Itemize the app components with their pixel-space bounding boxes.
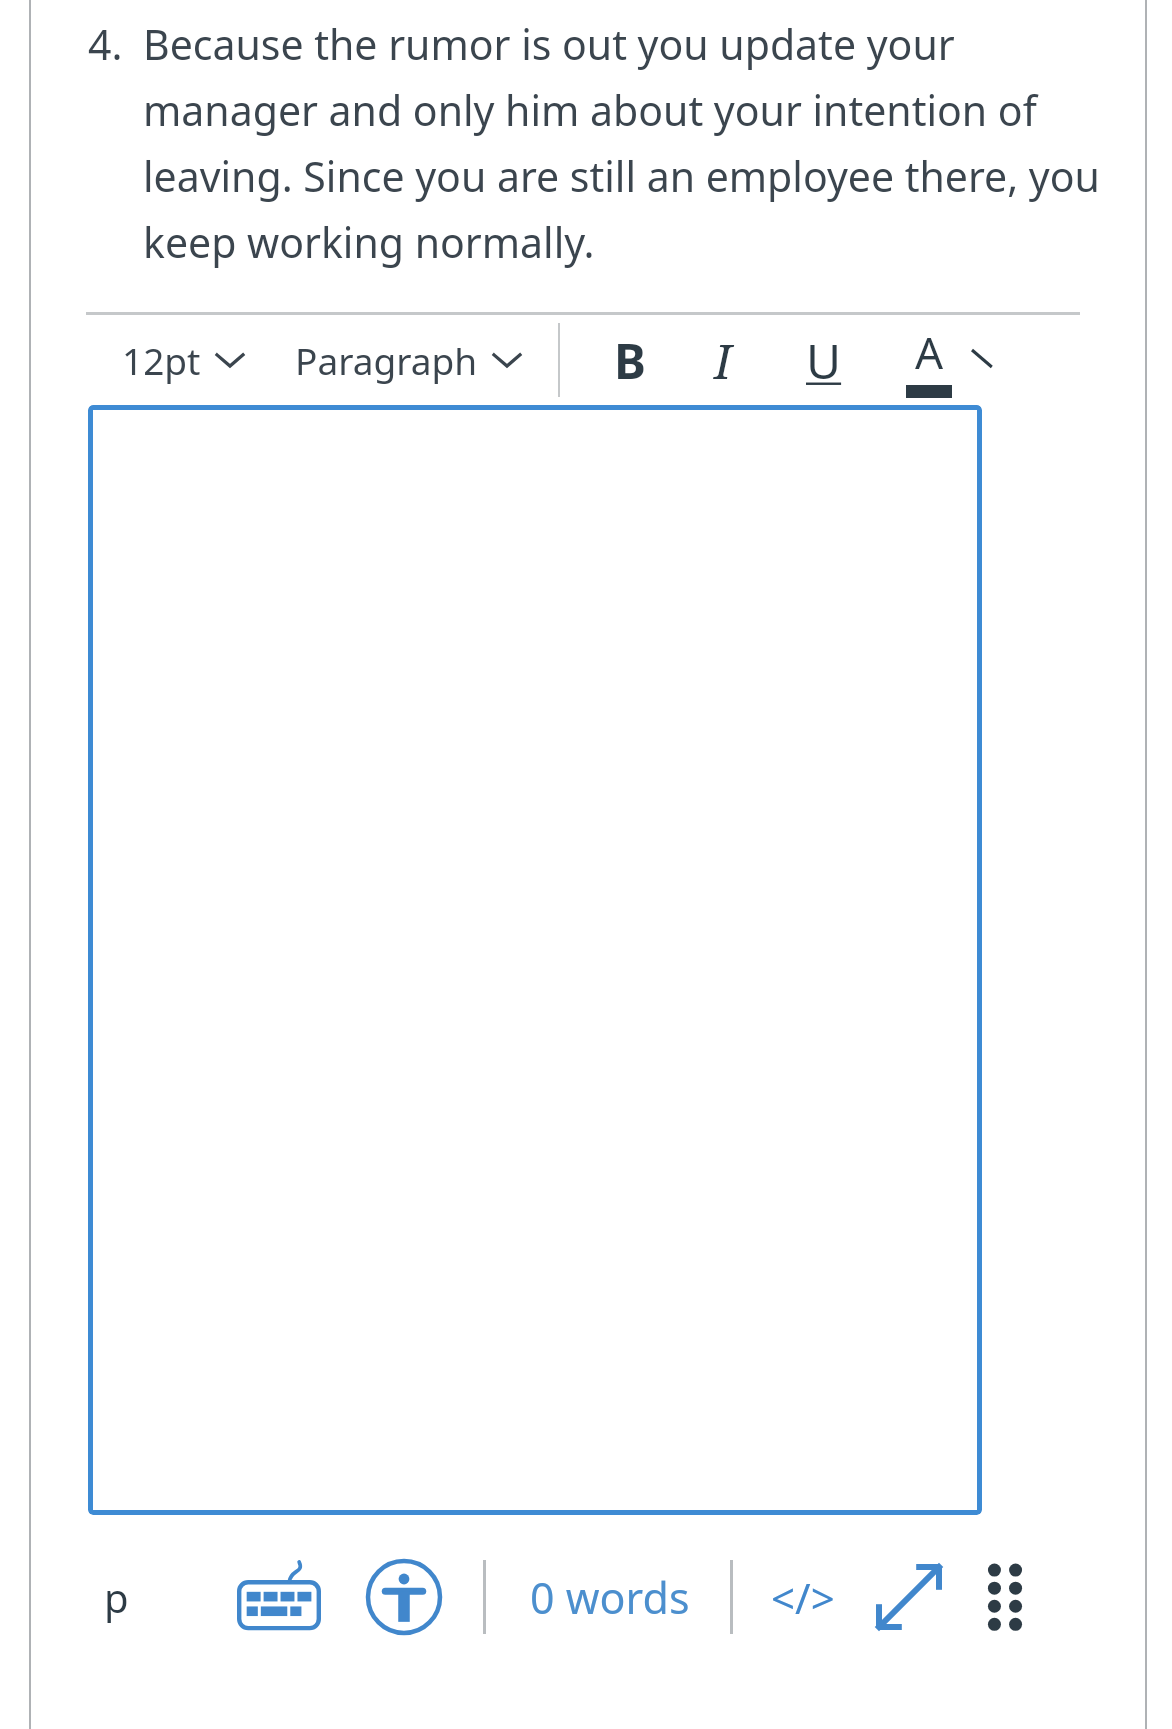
staticText: A: [915, 322, 944, 382]
staticText: </>: [771, 1569, 835, 1626]
button[interactable]: [88, 405, 982, 1515]
button[interactable]: B: [604, 318, 656, 403]
button[interactable]: Drag handle: [981, 1555, 1029, 1639]
button[interactable]: 0 words: [530, 1568, 690, 1627]
button[interactable]: Accessibility checker: [365, 1558, 443, 1636]
staticText: Paragraph: [295, 335, 478, 385]
staticText: 4.: [88, 16, 123, 72]
staticText: 12pt: [122, 335, 201, 385]
button[interactable]: Resize: [871, 1559, 947, 1635]
button[interactable]: HTML editor: [771, 1569, 835, 1626]
button[interactable]: I: [704, 318, 742, 403]
staticText: U: [806, 328, 842, 393]
staticText: B: [614, 328, 646, 393]
button[interactable]: 12pt: [118, 327, 247, 393]
button[interactable]: Text color: [900, 316, 958, 404]
button[interactable]: U: [796, 318, 852, 403]
button[interactable]: Keyboard shortcuts: [237, 1560, 321, 1634]
staticText: I: [714, 328, 732, 393]
staticText: Because the rumor is out you update your…: [143, 16, 1100, 270]
button[interactable]: p: [104, 1570, 129, 1624]
button[interactable]: Paragraph: [291, 327, 524, 393]
